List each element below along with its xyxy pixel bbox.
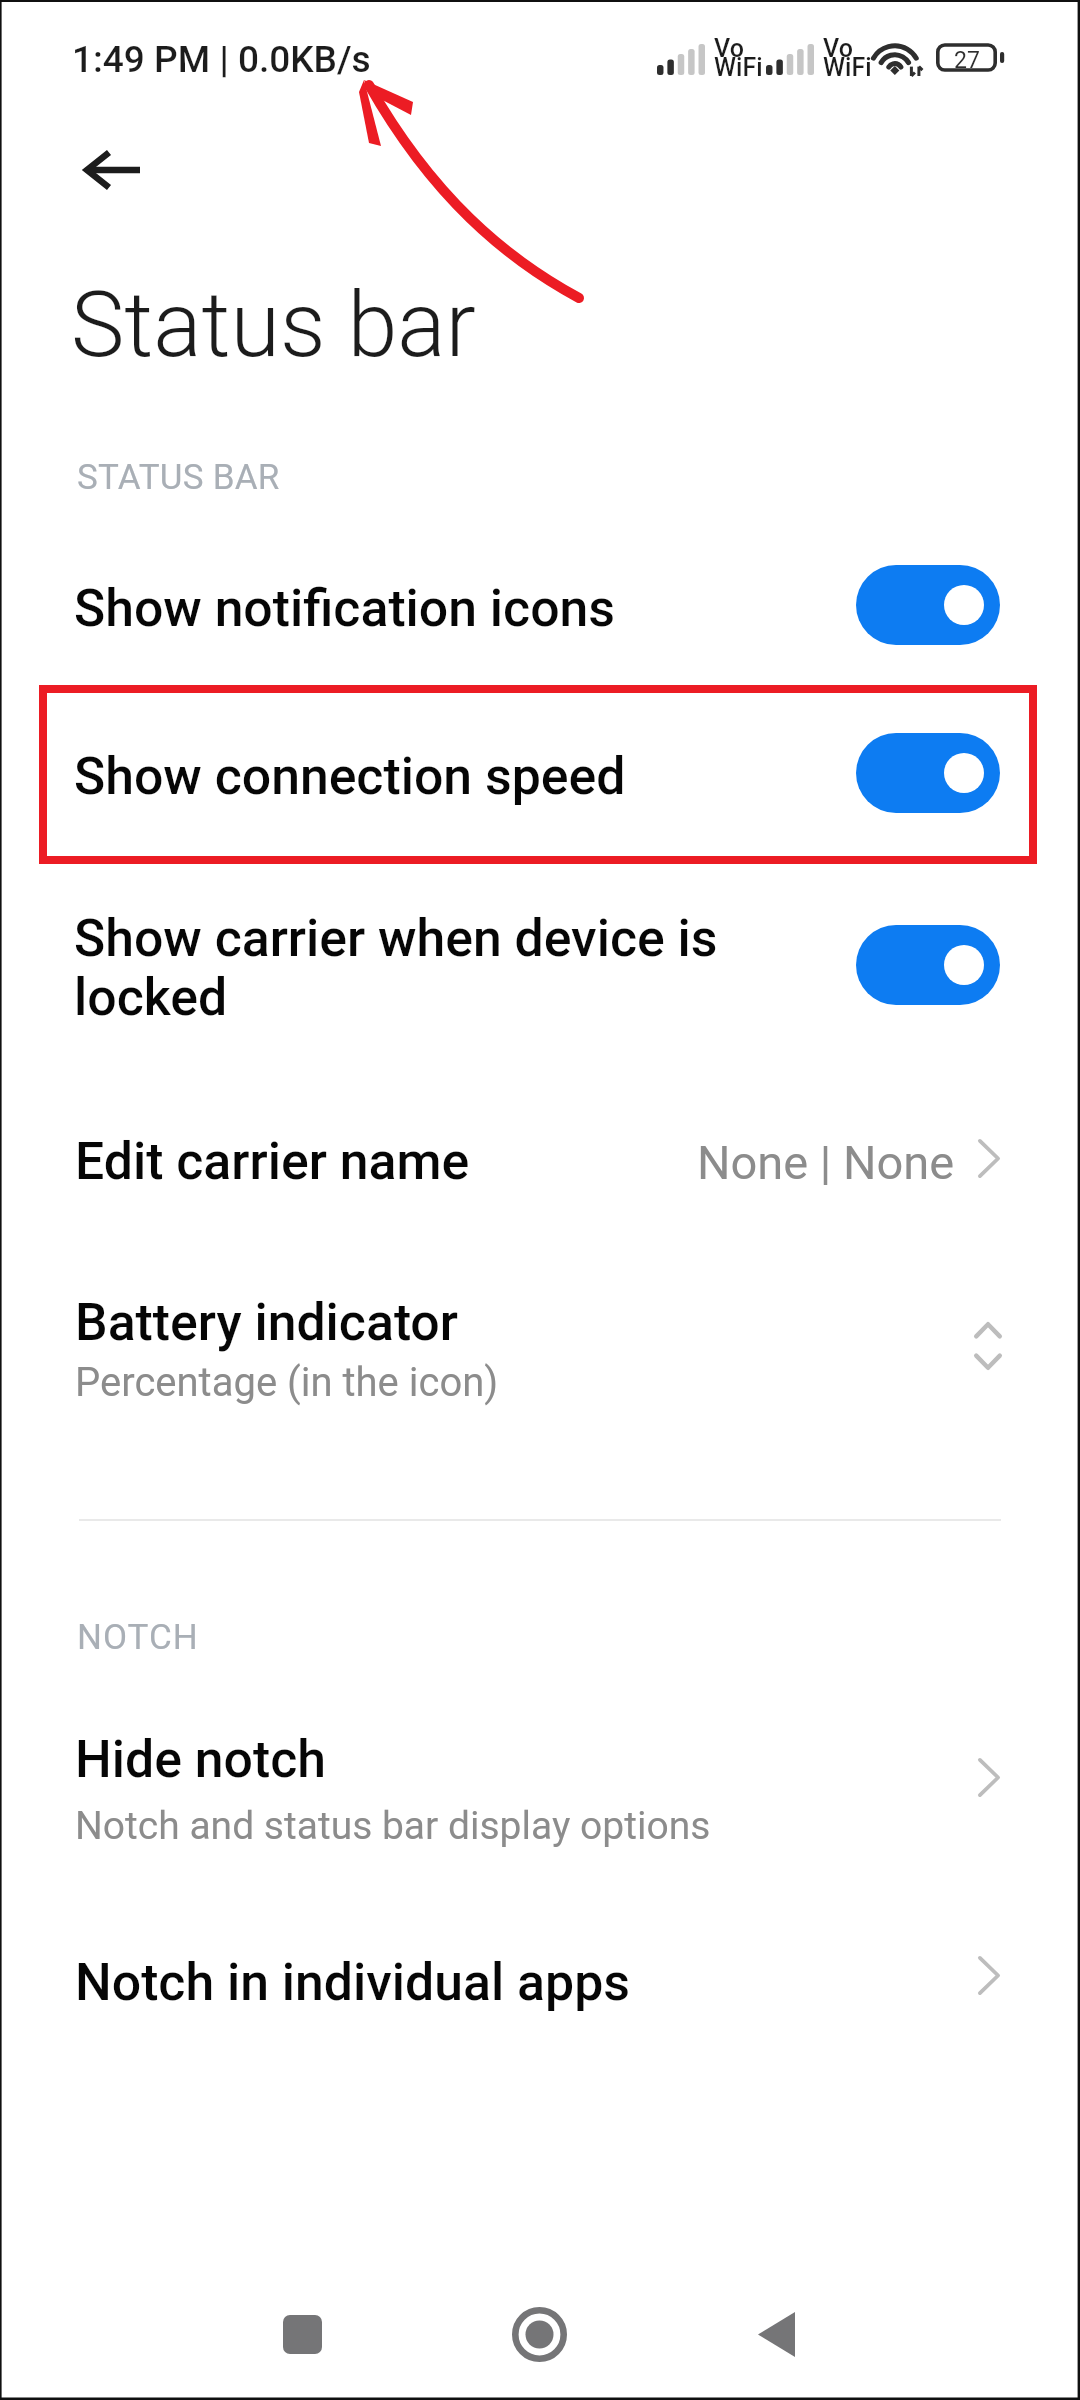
button[interactable]: Back [677, 2255, 877, 2400]
button[interactable]: Navigate up [40, 118, 168, 218]
staticText: Show carrier when device is [74, 908, 718, 969]
button[interactable]: Show connection speed [856, 733, 1000, 813]
button[interactable]: Hide notch [0, 1700, 1080, 1890]
button[interactable]: Show notification icons [0, 540, 1080, 690]
staticText: Vo [714, 34, 744, 63]
staticText: STATUS BAR [77, 457, 280, 498]
staticText: Status bar [71, 273, 476, 378]
button[interactable]: Show carrier when device is [0, 870, 1080, 1070]
staticText: WiFi [714, 53, 763, 82]
staticText: Edit carrier name [75, 1131, 470, 1192]
button[interactable]: Edit carrier name [0, 1085, 1080, 1253]
staticText: Vo [823, 34, 853, 63]
staticText: locked [74, 967, 228, 1028]
staticText: 1:49 PM | 0.0KB/s [72, 38, 371, 81]
staticText: Show connection speed [74, 746, 626, 807]
staticText: Show notification icons [74, 578, 616, 639]
staticText: None | None [697, 1135, 955, 1190]
staticText: Notch in individual apps [75, 1952, 630, 2013]
button[interactable]: Show connection speed [0, 693, 1080, 855]
staticText: Notch and status bar display options [75, 1803, 711, 1849]
button[interactable]: Notch in individual apps [0, 1920, 1080, 2080]
staticText: WiFi [823, 53, 872, 82]
button[interactable]: Home [440, 2255, 640, 2400]
button[interactable]: Show carrier when device is locked [856, 925, 1000, 1005]
button[interactable]: Battery indicator [0, 1265, 1080, 1465]
staticText: Percentage (in the icon) [75, 1359, 499, 1406]
staticText: 27 [954, 47, 980, 74]
button[interactable]: Recent apps [202, 2255, 402, 2400]
staticText: Battery indicator [75, 1292, 458, 1353]
staticText: Hide notch [75, 1729, 326, 1790]
staticText: NOTCH [77, 1617, 199, 1658]
button[interactable]: Show notification icons [856, 565, 1000, 645]
